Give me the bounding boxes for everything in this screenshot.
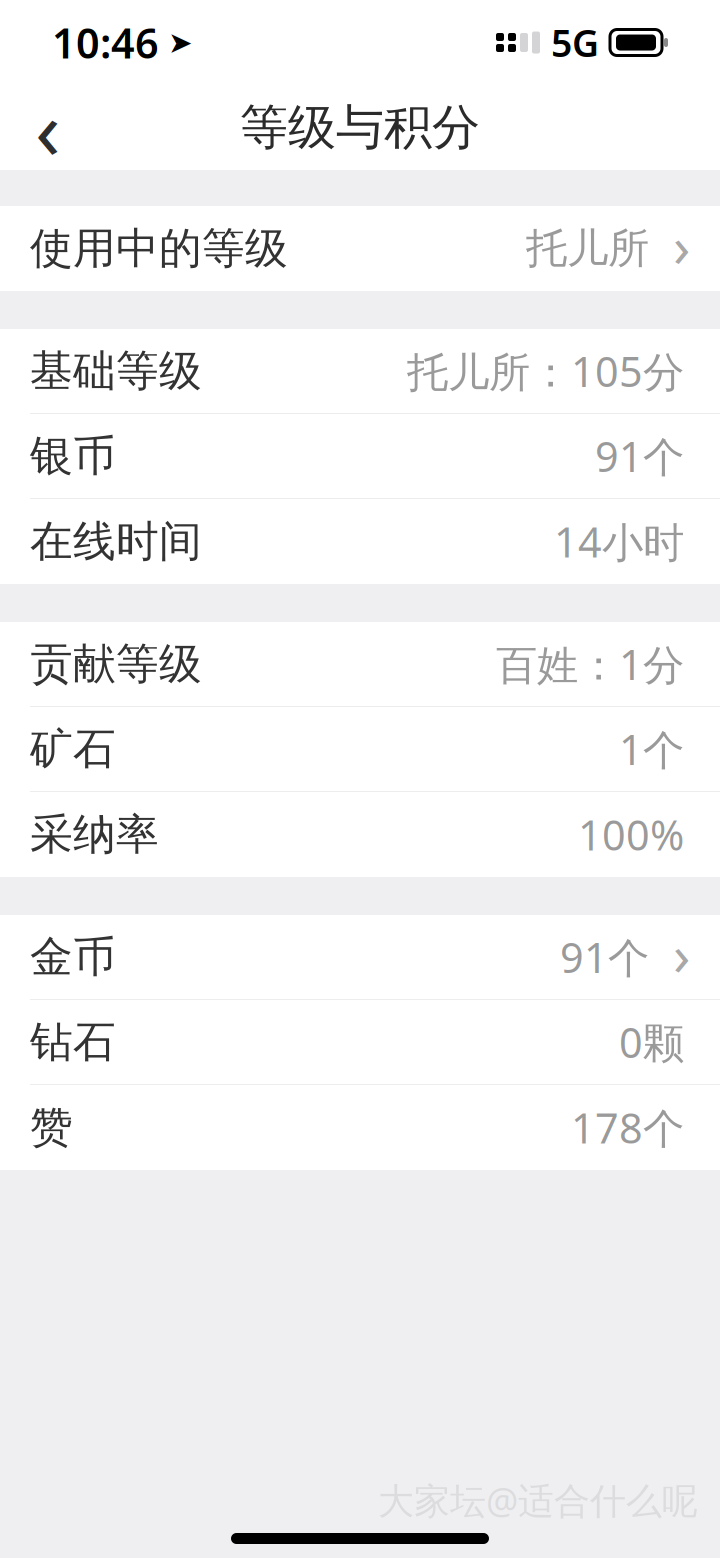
button[interactable]: 金币: [0, 915, 720, 1000]
staticText: 在线时间: [30, 515, 202, 568]
button[interactable]: 基础等级: [0, 329, 720, 414]
staticText: ›: [673, 208, 690, 283]
staticText: 托儿所：105分: [407, 344, 684, 398]
staticText: 178个: [571, 1100, 684, 1155]
button[interactable]: 使用中的等级: [0, 206, 720, 291]
staticText: 14小时: [554, 514, 684, 569]
staticText: 1个: [619, 722, 684, 776]
staticText: 使用中的等级: [30, 222, 288, 275]
staticText: 贡献等级: [30, 638, 202, 690]
button[interactable]: 矿石: [0, 707, 720, 792]
staticText: 10:46: [52, 15, 159, 70]
staticText: ➤: [168, 26, 193, 59]
staticText: 百姓：1分: [496, 637, 684, 691]
button[interactable]: 钻石: [0, 1000, 720, 1085]
staticText: 0颗: [619, 1015, 684, 1069]
button[interactable]: 采纳率: [0, 792, 720, 877]
staticText: 钻石: [30, 1016, 116, 1068]
staticText: 采纳率: [30, 808, 159, 861]
staticText: 赞: [30, 1101, 73, 1154]
staticText: 91个: [560, 930, 649, 984]
button[interactable]: 在线时间: [0, 499, 720, 584]
staticText: 大家坛@适合什么呢: [378, 1476, 698, 1524]
staticText: 基础等级: [30, 345, 202, 397]
staticText: ‹: [35, 73, 61, 182]
staticText: 91个: [595, 429, 684, 483]
staticText: 5G: [551, 18, 599, 67]
button[interactable]: 赞: [0, 1085, 720, 1170]
button[interactable]: 返回: [0, 89, 76, 165]
staticText: 矿石: [30, 723, 116, 775]
staticText: 等级与积分: [240, 98, 480, 157]
staticText: ›: [673, 917, 690, 991]
staticText: 托儿所: [526, 223, 649, 274]
staticText: 银币: [30, 430, 116, 482]
button[interactable]: 银币: [0, 414, 720, 499]
staticText: 100%: [578, 807, 684, 862]
button[interactable]: 贡献等级: [0, 622, 720, 707]
staticText: 金币: [30, 931, 116, 983]
